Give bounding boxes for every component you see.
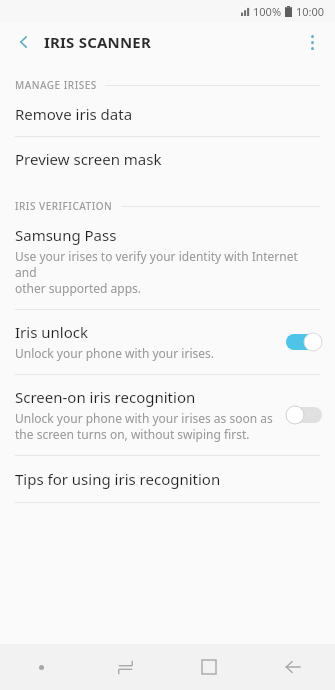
staticText: Preview screen mask (15, 149, 162, 169)
button[interactable]: Home (167, 644, 251, 690)
button[interactable]: Back (251, 644, 335, 690)
staticText: Screen-on iris recognition (15, 387, 196, 407)
staticText: the screen turns on, without swiping fir… (15, 426, 250, 442)
staticText: 100% (253, 4, 282, 19)
staticText: Unlock your phone with your irises as so… (15, 410, 273, 426)
staticText: Remove iris data (15, 104, 133, 124)
staticText: IRIS VERIFICATION (15, 199, 113, 213)
button[interactable]: Tips for using iris recognition (0, 456, 335, 502)
button[interactable]: On (286, 333, 322, 351)
staticText: MANAGE IRISES (15, 78, 97, 92)
staticText: Samsung Pass (15, 225, 117, 245)
staticText: 10:00 (296, 4, 325, 19)
staticText: Use your irises to verify your identity … (15, 248, 320, 280)
staticText: other supported apps. (15, 280, 142, 296)
button[interactable]: Screen-on iris recognition (0, 375, 335, 455)
button[interactable]: Iris unlock (0, 310, 335, 374)
button[interactable]: Samsung Pass (0, 213, 335, 309)
staticText: Iris unlock (15, 322, 88, 342)
staticText: IRIS SCANNER (44, 32, 151, 52)
button[interactable]: Remove iris data (0, 92, 335, 136)
button[interactable]: Preview screen mask (0, 137, 335, 181)
button[interactable]: Recents (83, 644, 167, 690)
button[interactable]: More options (295, 25, 329, 59)
button[interactable]: Off (286, 406, 322, 424)
button[interactable]: Back (8, 26, 40, 58)
staticText: Unlock your phone with your irises. (15, 345, 214, 361)
staticText: Tips for using iris recognition (15, 469, 221, 489)
